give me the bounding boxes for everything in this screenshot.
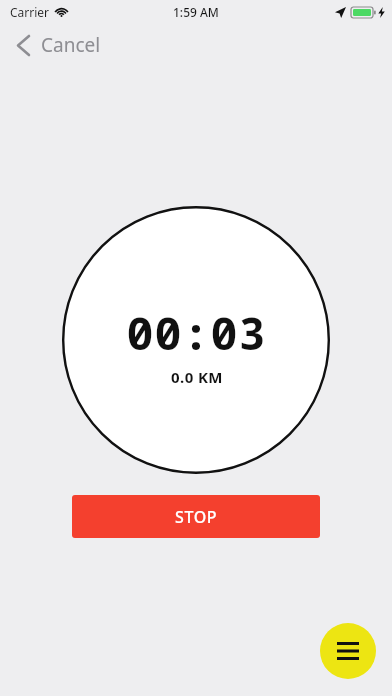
button[interactable]: STOP bbox=[72, 495, 320, 538]
button[interactable]: Menu bbox=[320, 623, 376, 679]
staticText: Carrier bbox=[10, 4, 50, 20]
staticText: STOP bbox=[175, 506, 218, 528]
staticText: 00:03 bbox=[126, 302, 267, 363]
staticText: Cancel bbox=[41, 32, 101, 58]
staticText: 0.0 KM bbox=[171, 367, 223, 387]
staticText: 1:59 AM bbox=[173, 4, 219, 20]
button[interactable]: Cancel bbox=[0, 24, 392, 66]
